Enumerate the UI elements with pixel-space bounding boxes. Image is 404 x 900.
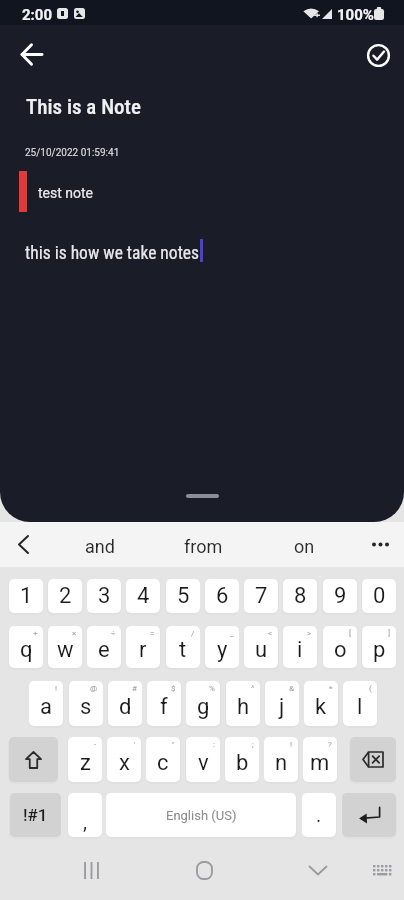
button[interactable]: Enter	[342, 793, 396, 837]
button[interactable]: h	[226, 681, 260, 726]
button[interactable]: 4	[126, 579, 160, 613]
button[interactable]: and	[50, 524, 150, 569]
button[interactable]: More options	[362, 526, 399, 563]
button[interactable]: e	[87, 626, 121, 668]
button[interactable]: j	[265, 681, 299, 726]
staticText: c	[157, 750, 169, 776]
staticText: 7	[255, 583, 268, 609]
staticText: ^	[251, 684, 255, 693]
button[interactable]: g	[186, 681, 220, 726]
staticText: $	[171, 684, 176, 693]
staticText: 2:00	[22, 6, 53, 24]
button[interactable]: f	[147, 681, 181, 726]
button[interactable]: 8	[283, 579, 317, 613]
button[interactable]: r	[126, 626, 160, 668]
button[interactable]: 3	[87, 579, 121, 613]
button[interactable]: l	[343, 681, 377, 726]
staticText: &	[289, 684, 294, 693]
staticText: >	[307, 629, 312, 638]
button[interactable]: b	[225, 737, 259, 782]
staticText: !	[290, 740, 293, 749]
button[interactable]: English (US)	[106, 793, 296, 837]
button[interactable]: on	[254, 524, 354, 569]
staticText: test note	[38, 185, 94, 201]
button[interactable]: 1	[9, 579, 43, 613]
button[interactable]: .	[302, 793, 336, 837]
button[interactable]: i	[283, 626, 317, 668]
button[interactable]: Previous suggestions	[5, 526, 42, 563]
button[interactable]: Home	[184, 850, 225, 891]
button[interactable]: 2	[48, 579, 82, 613]
button[interactable]: Backspace	[350, 737, 396, 782]
staticText: o	[334, 637, 347, 663]
button[interactable]: w	[48, 626, 82, 668]
staticText: and	[85, 536, 115, 557]
button[interactable]: y	[205, 626, 239, 668]
staticText: b	[236, 750, 249, 776]
button[interactable]: c	[146, 737, 180, 782]
button[interactable]: v	[186, 737, 220, 782]
staticText: q	[20, 637, 33, 663]
staticText: 8	[294, 583, 307, 609]
button[interactable]: Recents	[71, 850, 112, 891]
button[interactable]: x	[107, 737, 141, 782]
staticText: p	[373, 637, 386, 663]
button[interactable]: a	[29, 681, 63, 726]
button[interactable]: 6	[205, 579, 239, 613]
staticText: 5	[177, 583, 190, 609]
button[interactable]: q	[9, 626, 43, 668]
staticText: <	[268, 629, 273, 638]
button[interactable]: Back	[11, 34, 51, 74]
staticText: this is how we take notes	[25, 243, 199, 264]
staticText: on	[294, 536, 315, 557]
staticText: 9	[334, 583, 347, 609]
staticText: ?	[328, 740, 332, 749]
button[interactable]: 5	[166, 579, 200, 613]
button[interactable]: s	[69, 681, 103, 726]
staticText: l	[357, 694, 363, 720]
button[interactable]: Save note	[358, 35, 398, 75]
button[interactable]: Shift	[9, 737, 58, 782]
staticText: 4	[137, 583, 150, 609]
staticText: #	[132, 684, 137, 693]
staticText: e	[98, 637, 110, 663]
button[interactable]: n	[264, 737, 298, 782]
staticText: ;	[252, 740, 254, 749]
button[interactable]: t	[166, 626, 200, 668]
button[interactable]: u	[244, 626, 278, 668]
button[interactable]: Change keyboard	[362, 850, 403, 891]
button[interactable]: p	[362, 626, 396, 668]
staticText: from	[184, 536, 223, 557]
staticText: 25/10/2022 01:59:41	[25, 147, 120, 159]
button[interactable]: from	[153, 524, 253, 569]
staticText: w	[57, 637, 74, 663]
button[interactable]: 0	[362, 579, 396, 613]
button[interactable]: 7	[244, 579, 278, 613]
button[interactable]: z	[68, 737, 102, 782]
staticText: '	[134, 740, 136, 749]
staticText: (	[369, 684, 372, 693]
staticText: ]	[388, 629, 391, 638]
staticText: :	[213, 740, 215, 749]
staticText: t	[179, 637, 187, 663]
staticText: /	[191, 629, 195, 638]
staticText: English (US)	[166, 808, 237, 823]
button[interactable]: d	[108, 681, 142, 726]
button[interactable]: k	[304, 681, 338, 726]
staticText: d	[119, 694, 132, 720]
button[interactable]: Hide keyboard	[297, 850, 338, 891]
button[interactable]: 9	[323, 579, 357, 613]
staticText: !	[55, 684, 58, 693]
staticText: "	[172, 740, 175, 749]
staticText: a	[40, 694, 52, 720]
button[interactable]: o	[323, 626, 357, 668]
button[interactable]: !#1	[10, 793, 61, 837]
staticText: h	[237, 694, 250, 720]
staticText: *	[329, 684, 333, 693]
button[interactable]: ,	[68, 793, 102, 837]
staticText: z	[80, 750, 91, 776]
staticText: ×	[72, 629, 77, 638]
staticText: ,	[83, 810, 87, 833]
button[interactable]: m	[303, 737, 337, 782]
staticText: +	[33, 629, 38, 638]
